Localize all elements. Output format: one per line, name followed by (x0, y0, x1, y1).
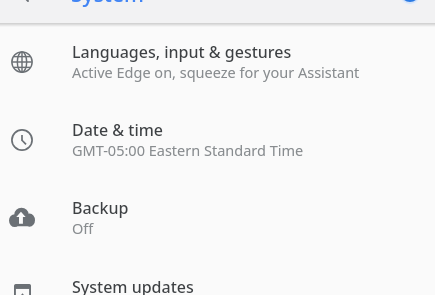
staticText: Active Edge on, squeeze for your Assista… (72, 62, 360, 82)
staticText: Date & time (72, 119, 164, 141)
staticText: System (71, 0, 144, 9)
button[interactable]: Languages, input & gestures (0, 23, 435, 101)
staticText: Off (72, 218, 94, 238)
staticText: Backup (72, 197, 129, 219)
staticText: System updates (72, 276, 194, 295)
staticText: GMT-05:00 Eastern Standard Time (72, 140, 304, 160)
button[interactable]: Account (400, 0, 420, 3)
button[interactable]: Date & time (0, 101, 435, 179)
button[interactable]: Navigate up (17, 0, 41, 7)
button[interactable]: System updates (0, 258, 435, 295)
button[interactable]: Backup (0, 179, 435, 257)
staticText: Languages, input & gestures (72, 41, 292, 63)
